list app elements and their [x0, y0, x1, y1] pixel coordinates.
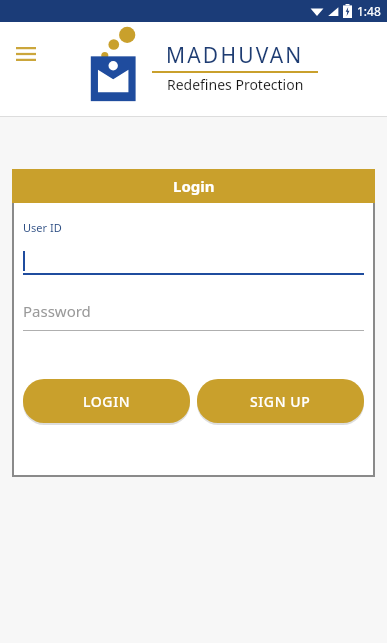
button[interactable]: LOGIN — [23, 379, 190, 423]
staticText: Redefines Protection — [167, 75, 304, 94]
staticText: Login — [173, 176, 215, 196]
button[interactable]: Open navigation menu — [8, 36, 44, 72]
staticText: User ID — [23, 220, 62, 235]
staticText: 1:48 — [357, 3, 381, 19]
button[interactable]: Password — [23, 299, 364, 331]
staticText: SIGN UP — [250, 392, 311, 411]
staticText: MADHUVAN — [166, 41, 304, 70]
staticText: Password — [23, 301, 91, 321]
button[interactable]: User ID — [23, 220, 364, 275]
button[interactable]: SIGN UP — [197, 379, 364, 423]
staticText: LOGIN — [83, 392, 131, 411]
